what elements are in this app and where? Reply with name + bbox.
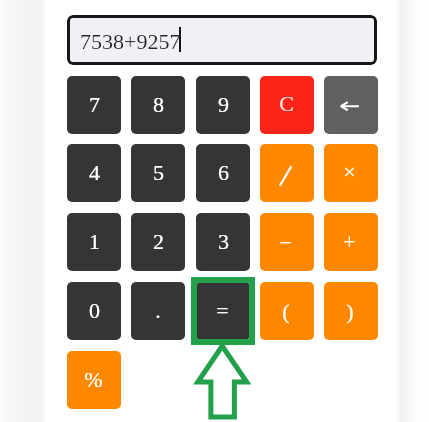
- staticText: 4: [89, 160, 100, 184]
- button[interactable]: 0: [67, 282, 121, 340]
- button[interactable]: Clear: [260, 76, 314, 134]
- staticText: 6: [218, 160, 229, 184]
- button[interactable]: Multiply: [324, 144, 378, 202]
- staticText: ×: [343, 159, 356, 183]
- button[interactable]: .: [131, 282, 185, 340]
- button[interactable]: 2: [131, 213, 185, 271]
- staticText: 5: [153, 160, 164, 184]
- staticText: 2: [153, 229, 164, 253]
- staticText: 9: [218, 92, 229, 116]
- staticText: 1: [89, 229, 100, 253]
- staticText: ): [346, 299, 354, 323]
- staticText: .: [155, 298, 161, 322]
- button[interactable]: Minus: [260, 213, 314, 271]
- staticText: C: [279, 91, 294, 115]
- button[interactable]: Divide: [260, 144, 314, 202]
- button[interactable]: 1: [67, 213, 121, 271]
- staticText: %: [84, 367, 103, 391]
- staticText: −: [279, 230, 292, 254]
- staticText: 0: [89, 298, 100, 322]
- button[interactable]: Backspace: [324, 76, 378, 134]
- staticText: 7538+9257: [80, 29, 181, 53]
- button[interactable]: 9: [196, 76, 250, 134]
- staticText: 7: [89, 92, 100, 116]
- staticText: 8: [153, 92, 164, 116]
- button[interactable]: Percent: [67, 351, 121, 409]
- button[interactable]: 7538+9257: [67, 15, 377, 65]
- button[interactable]: 7: [67, 76, 121, 134]
- button[interactable]: =: [196, 282, 250, 340]
- button[interactable]: 8: [131, 76, 185, 134]
- button[interactable]: 3: [196, 213, 250, 271]
- button[interactable]: 6: [196, 144, 250, 202]
- button[interactable]: Close parenthesis: [324, 282, 378, 340]
- button[interactable]: Open parenthesis: [260, 282, 314, 340]
- staticText: 3: [218, 229, 229, 253]
- button[interactable]: 5: [131, 144, 185, 202]
- button[interactable]: Plus: [324, 213, 378, 271]
- button[interactable]: 4: [67, 144, 121, 202]
- staticText: +: [343, 229, 356, 253]
- staticText: (: [282, 299, 290, 323]
- staticText: =: [216, 298, 229, 322]
